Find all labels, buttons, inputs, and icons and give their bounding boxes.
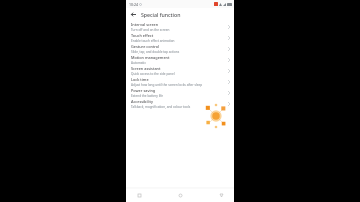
staticText: Motion management [131, 55, 170, 60]
button[interactable]: Accessibility [126, 98, 234, 109]
staticText: Screen assistant [131, 66, 161, 71]
staticText: Slide, tap, and double tap actions [131, 50, 180, 54]
button[interactable]: Back [216, 190, 226, 200]
button[interactable]: Recents [134, 190, 144, 200]
staticText: Power saving [131, 88, 156, 93]
button[interactable]: Gesture control [126, 43, 234, 54]
staticText: Lock time [131, 77, 149, 82]
staticText: Touch effect [131, 33, 154, 38]
button[interactable]: Interval screen [126, 21, 234, 32]
button[interactable]: Home [175, 190, 185, 200]
button[interactable]: Screen assistant [126, 65, 234, 76]
button[interactable]: Assistant [204, 104, 228, 128]
staticText: Enable touch effect animation [131, 39, 175, 43]
staticText: Special function [141, 11, 181, 18]
staticText: Quick access to the side panel [131, 72, 175, 76]
staticText: Interval screen [131, 22, 159, 27]
button[interactable]: Motion management [126, 54, 234, 65]
staticText: Turn off and on the screen [131, 28, 170, 32]
staticText: Automatic [131, 61, 146, 65]
staticText: Gesture control [131, 44, 160, 49]
button[interactable]: Power saving [126, 87, 234, 98]
button[interactable]: Lock time [126, 76, 234, 87]
staticText: Extend the battery life [131, 94, 164, 98]
staticText: Accessibility [131, 99, 153, 104]
staticText: Adjust how long until the screen locks a… [131, 83, 203, 87]
staticText: Talkback, magnification, and colour tool… [131, 105, 191, 109]
button[interactable]: Touch effect [126, 32, 234, 43]
staticText: 10:24 [129, 2, 138, 7]
button[interactable]: Back [129, 10, 138, 19]
